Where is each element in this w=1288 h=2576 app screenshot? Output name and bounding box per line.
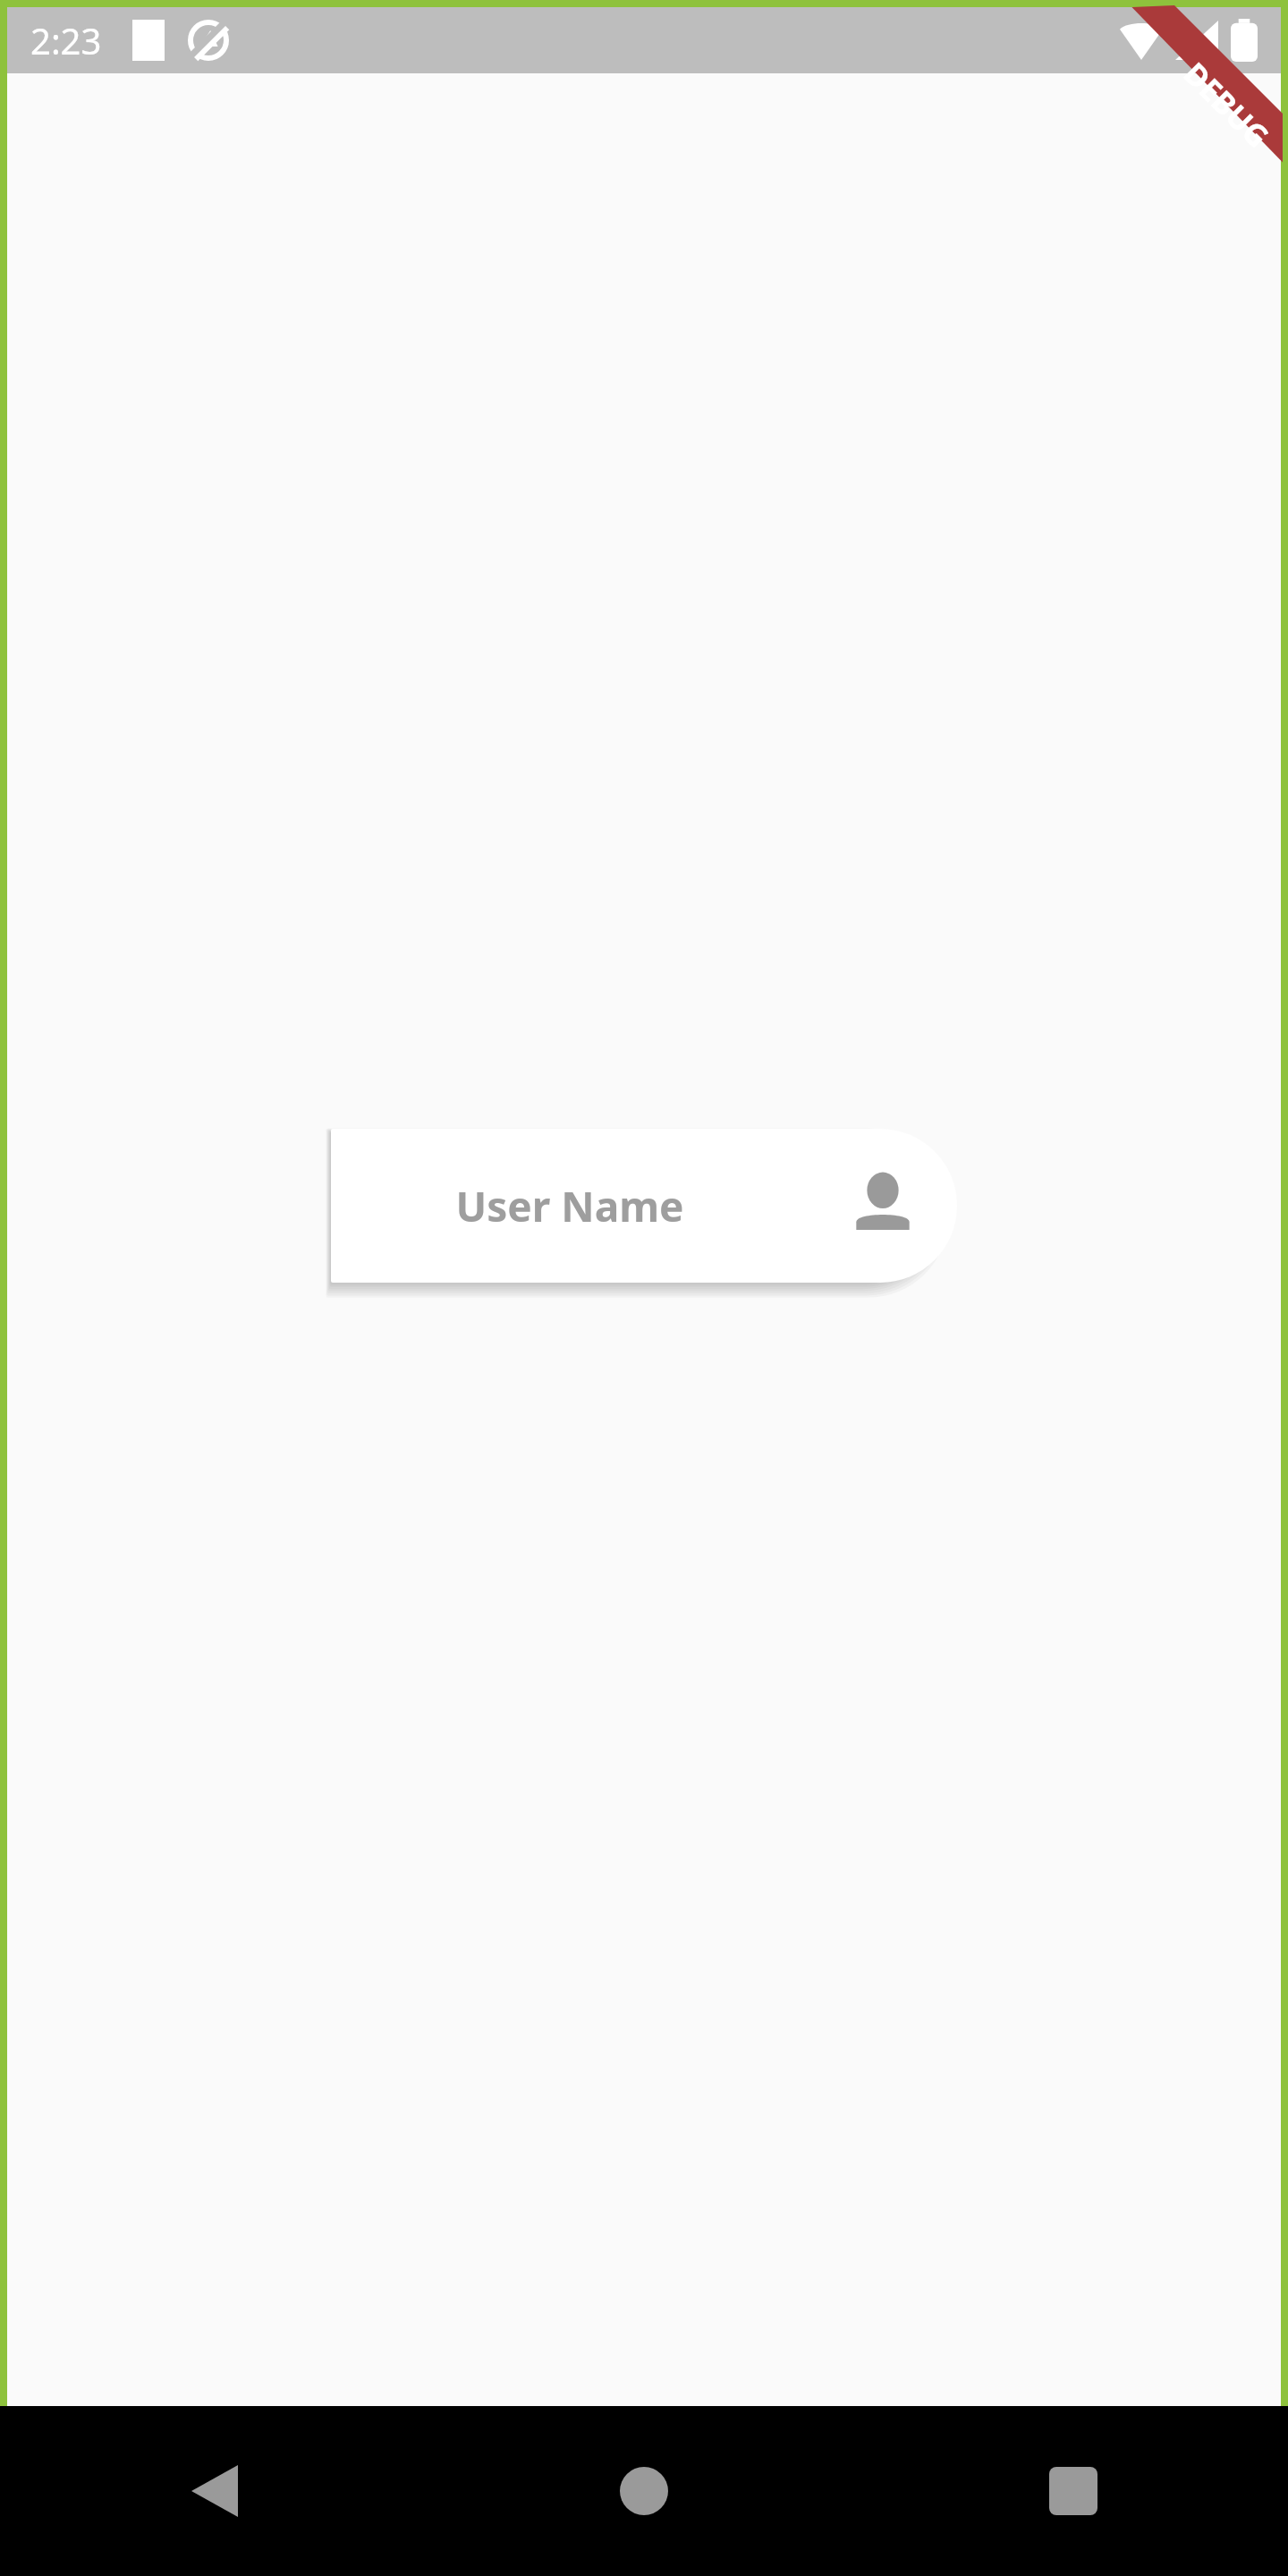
button[interactable]: Home xyxy=(429,2406,859,2576)
button[interactable]: User Name xyxy=(331,1129,957,1283)
button[interactable]: Recent apps xyxy=(859,2406,1288,2576)
button[interactable]: Back xyxy=(0,2406,429,2576)
staticText: 2:23 xyxy=(30,16,102,64)
staticText: User Name xyxy=(455,1178,684,1234)
staticText: DEBUG xyxy=(1175,53,1278,156)
